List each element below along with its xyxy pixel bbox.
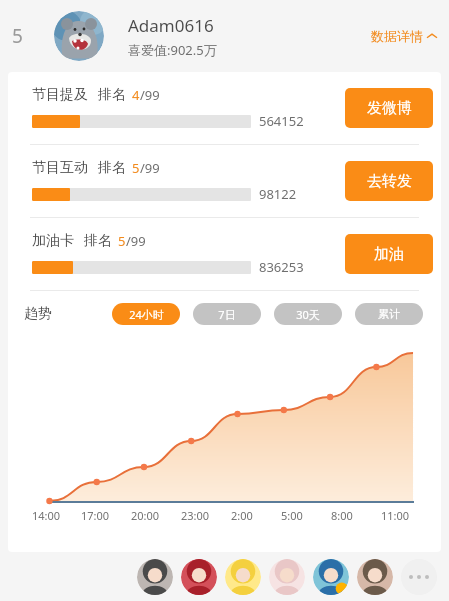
button[interactable]: Fan avatar 2	[181, 559, 217, 595]
button[interactable]: Fan avatar 6	[357, 559, 393, 595]
button[interactable]: Fan avatar 4	[269, 559, 305, 595]
staticText: 4	[132, 86, 140, 104]
button[interactable]: 累计	[355, 303, 423, 325]
staticText: 836253	[259, 258, 304, 276]
staticText: 17:00	[81, 508, 110, 523]
staticText: 30天	[296, 307, 320, 322]
button[interactable]: 去转发	[345, 161, 433, 201]
staticText: Adam0616	[128, 14, 214, 37]
staticText: 20:00	[131, 508, 160, 523]
staticText: 8:00	[331, 508, 353, 523]
staticText: 节目互动	[32, 159, 88, 177]
staticText: 节目提及	[32, 86, 88, 104]
staticText: 排名	[84, 232, 112, 250]
staticText: 趋势	[24, 305, 52, 323]
button[interactable]: 7日	[193, 303, 261, 325]
staticText: 98122	[259, 185, 297, 203]
staticText: 累计	[378, 307, 400, 321]
staticText: /99	[140, 86, 160, 104]
button[interactable]: Fan avatar 3	[225, 559, 261, 595]
staticText: 加油	[374, 245, 404, 264]
staticText: 加油卡	[32, 232, 74, 250]
staticText: /99	[126, 232, 146, 250]
staticText: 23:00	[181, 508, 210, 523]
staticText: 去转发	[367, 172, 412, 191]
button[interactable]: 30天	[274, 303, 342, 325]
button[interactable]: User avatar	[54, 11, 104, 61]
button[interactable]: 数据详情	[367, 24, 441, 48]
staticText: 14:00	[32, 508, 61, 523]
staticText: 7日	[218, 307, 236, 322]
staticText: 2:00	[231, 508, 253, 523]
staticText: 5	[132, 159, 140, 177]
staticText: 发微博	[367, 99, 412, 118]
staticText: 564152	[259, 112, 304, 130]
other: Collapse	[427, 31, 437, 41]
staticText: 5:00	[281, 508, 303, 523]
staticText: 排名	[98, 159, 126, 177]
staticText: 排名	[98, 86, 126, 104]
staticText: 5	[12, 23, 23, 49]
staticText: /99	[140, 159, 160, 177]
staticText: 11:00	[381, 508, 410, 523]
staticText: 5	[118, 232, 126, 250]
button[interactable]: Fan avatar 1	[137, 559, 173, 595]
button[interactable]: Fan avatar 5	[313, 559, 349, 595]
staticText: 数据详情	[371, 28, 423, 44]
button[interactable]: More fans	[401, 559, 437, 595]
button[interactable]: 加油	[345, 234, 433, 274]
button[interactable]: 24小时	[112, 303, 180, 325]
staticText: 24小时	[129, 307, 164, 322]
staticText: 喜爱值:902.5万	[128, 41, 217, 59]
button[interactable]: 发微博	[345, 88, 433, 128]
